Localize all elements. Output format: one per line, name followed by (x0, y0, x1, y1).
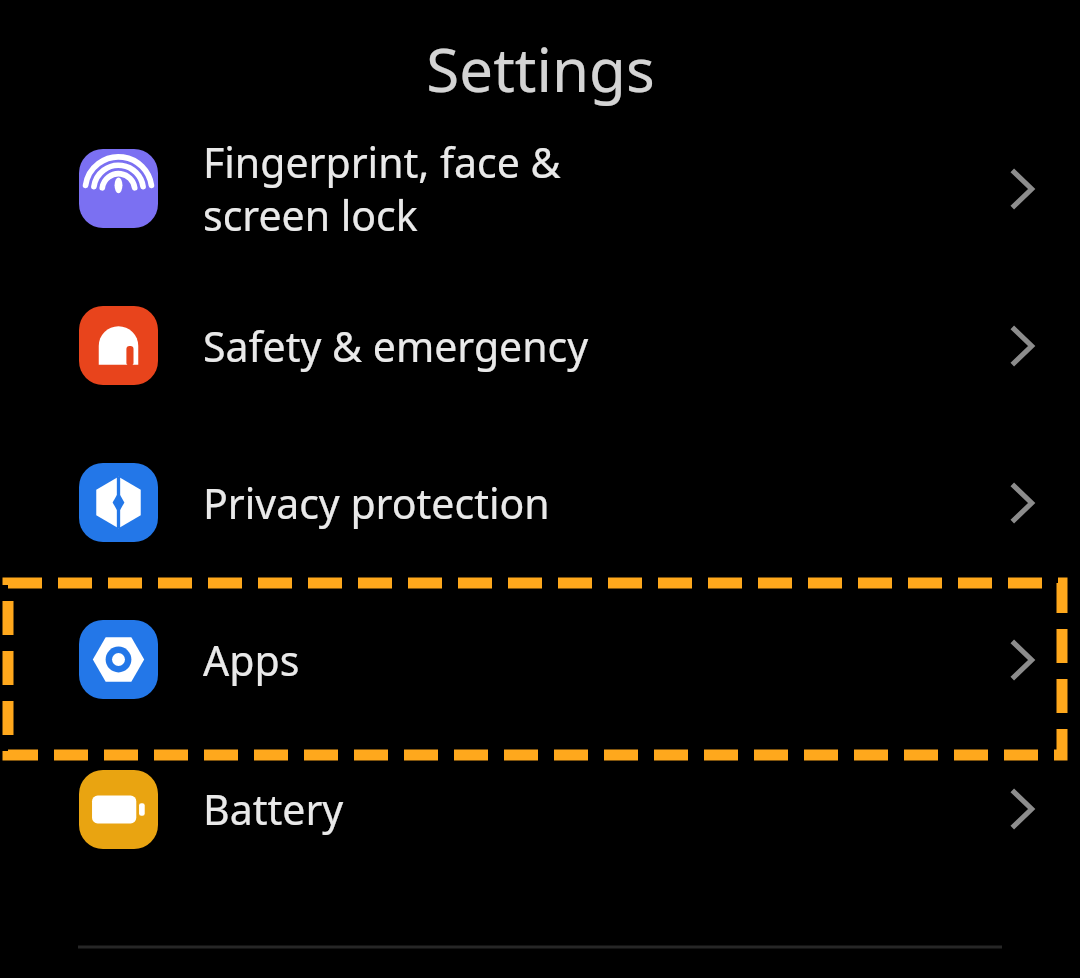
other: Open (995, 319, 1049, 373)
other: Open (995, 476, 1049, 530)
other: Open (995, 782, 1049, 836)
other: Open (995, 633, 1049, 687)
staticText: Fingerprint, face & screen lock (203, 138, 561, 243)
other: Open (995, 162, 1049, 216)
button[interactable]: Privacy protection (0, 424, 1080, 581)
button[interactable]: Apps (0, 581, 1080, 738)
staticText: Apps (203, 632, 300, 688)
staticText: Settings (426, 28, 655, 110)
staticText: Privacy protection (203, 475, 550, 531)
staticText: Battery (203, 781, 344, 837)
staticText: Safety & emergency (203, 318, 589, 374)
button[interactable]: Safety & emergency (0, 267, 1080, 424)
button[interactable]: Battery (0, 738, 1080, 880)
button[interactable]: Fingerprint, face & screen lock (0, 138, 1080, 267)
